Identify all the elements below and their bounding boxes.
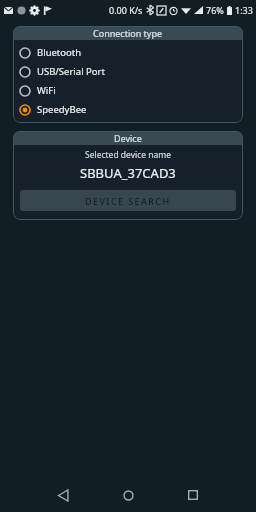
button[interactable]: DEVICE SEARCH <box>20 190 236 211</box>
staticText: WiFi <box>37 84 56 97</box>
button[interactable]: Recents <box>178 480 208 510</box>
button[interactable]: Home <box>113 480 143 510</box>
button[interactable]: Bluetooth <box>13 43 243 62</box>
button[interactable]: USB/Serial Port <box>13 62 243 81</box>
button[interactable]: Back <box>48 480 78 510</box>
button[interactable]: SpeedyBee <box>13 100 243 119</box>
staticText: 1:33 <box>235 4 253 16</box>
staticText: Selected device name <box>85 149 172 161</box>
staticText: 0.00 K/s <box>109 4 143 16</box>
staticText: SBBUA_37CAD3 <box>80 164 176 182</box>
staticText: Device <box>114 132 142 144</box>
staticText: DEVICE SEARCH <box>85 195 171 207</box>
staticText: SpeedyBee <box>37 103 87 116</box>
button[interactable]: WiFi <box>13 81 243 100</box>
staticText: 76% <box>206 4 224 16</box>
staticText: Connection type <box>93 27 163 39</box>
staticText: Bluetooth <box>37 46 82 59</box>
staticText: USB/Serial Port <box>37 65 105 78</box>
